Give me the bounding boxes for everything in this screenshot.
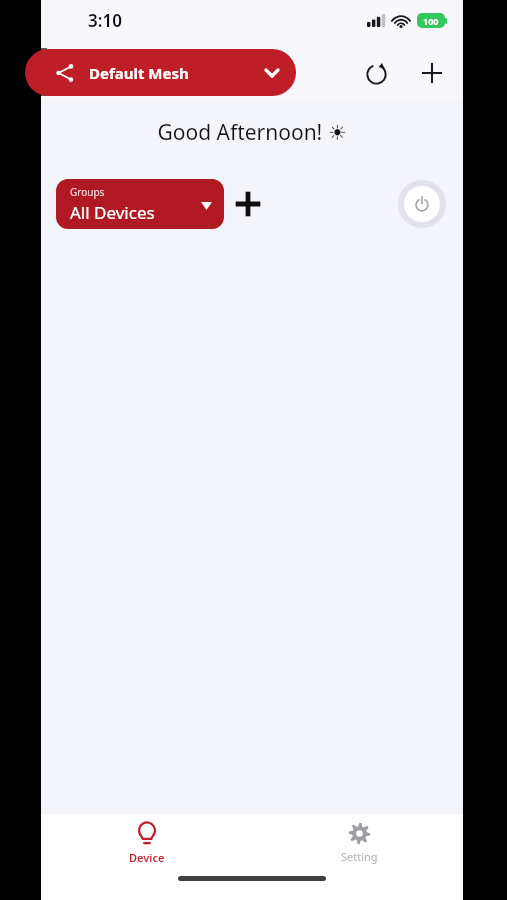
button[interactable]: Add xyxy=(408,49,456,97)
staticText: 3:10 xyxy=(88,9,122,32)
staticText: Default Mesh xyxy=(89,63,189,83)
staticText: Good Afternoon! ☀️ xyxy=(41,118,463,147)
staticText: Device xyxy=(129,850,165,865)
staticText: Setting xyxy=(341,849,378,864)
button[interactable]: Groups xyxy=(56,179,224,229)
button[interactable]: Default Mesh xyxy=(25,49,296,96)
button[interactable]: Device xyxy=(102,814,192,872)
button[interactable]: Setting xyxy=(314,814,404,872)
staticText: All Devices xyxy=(70,201,155,224)
staticText: Groups xyxy=(70,185,105,199)
button[interactable]: Power xyxy=(398,180,446,228)
button[interactable]: Add group xyxy=(226,182,270,226)
button[interactable]: Refresh xyxy=(352,49,400,97)
staticText: 100 xyxy=(423,15,439,27)
